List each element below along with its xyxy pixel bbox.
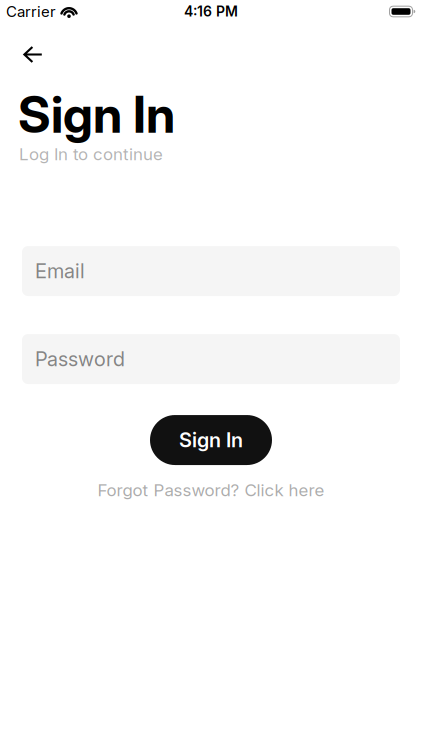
- button[interactable]: Password: [22, 334, 400, 384]
- staticText: Email: [35, 259, 85, 283]
- staticText: Log In to continue: [19, 144, 163, 164]
- button[interactable]: Sign In: [150, 415, 272, 465]
- staticText: 4:16 PM: [184, 3, 238, 20]
- staticText: Forgot Password? Click here: [97, 480, 324, 500]
- button[interactable]: Back: [0, 23, 43, 63]
- button[interactable]: Forgot Password? Click here: [97, 480, 324, 500]
- staticText: Sign In: [18, 85, 175, 144]
- staticText: Sign In: [179, 428, 243, 452]
- staticText: Password: [35, 347, 125, 371]
- staticText: Carrier: [6, 3, 56, 20]
- button[interactable]: Email: [22, 246, 400, 296]
